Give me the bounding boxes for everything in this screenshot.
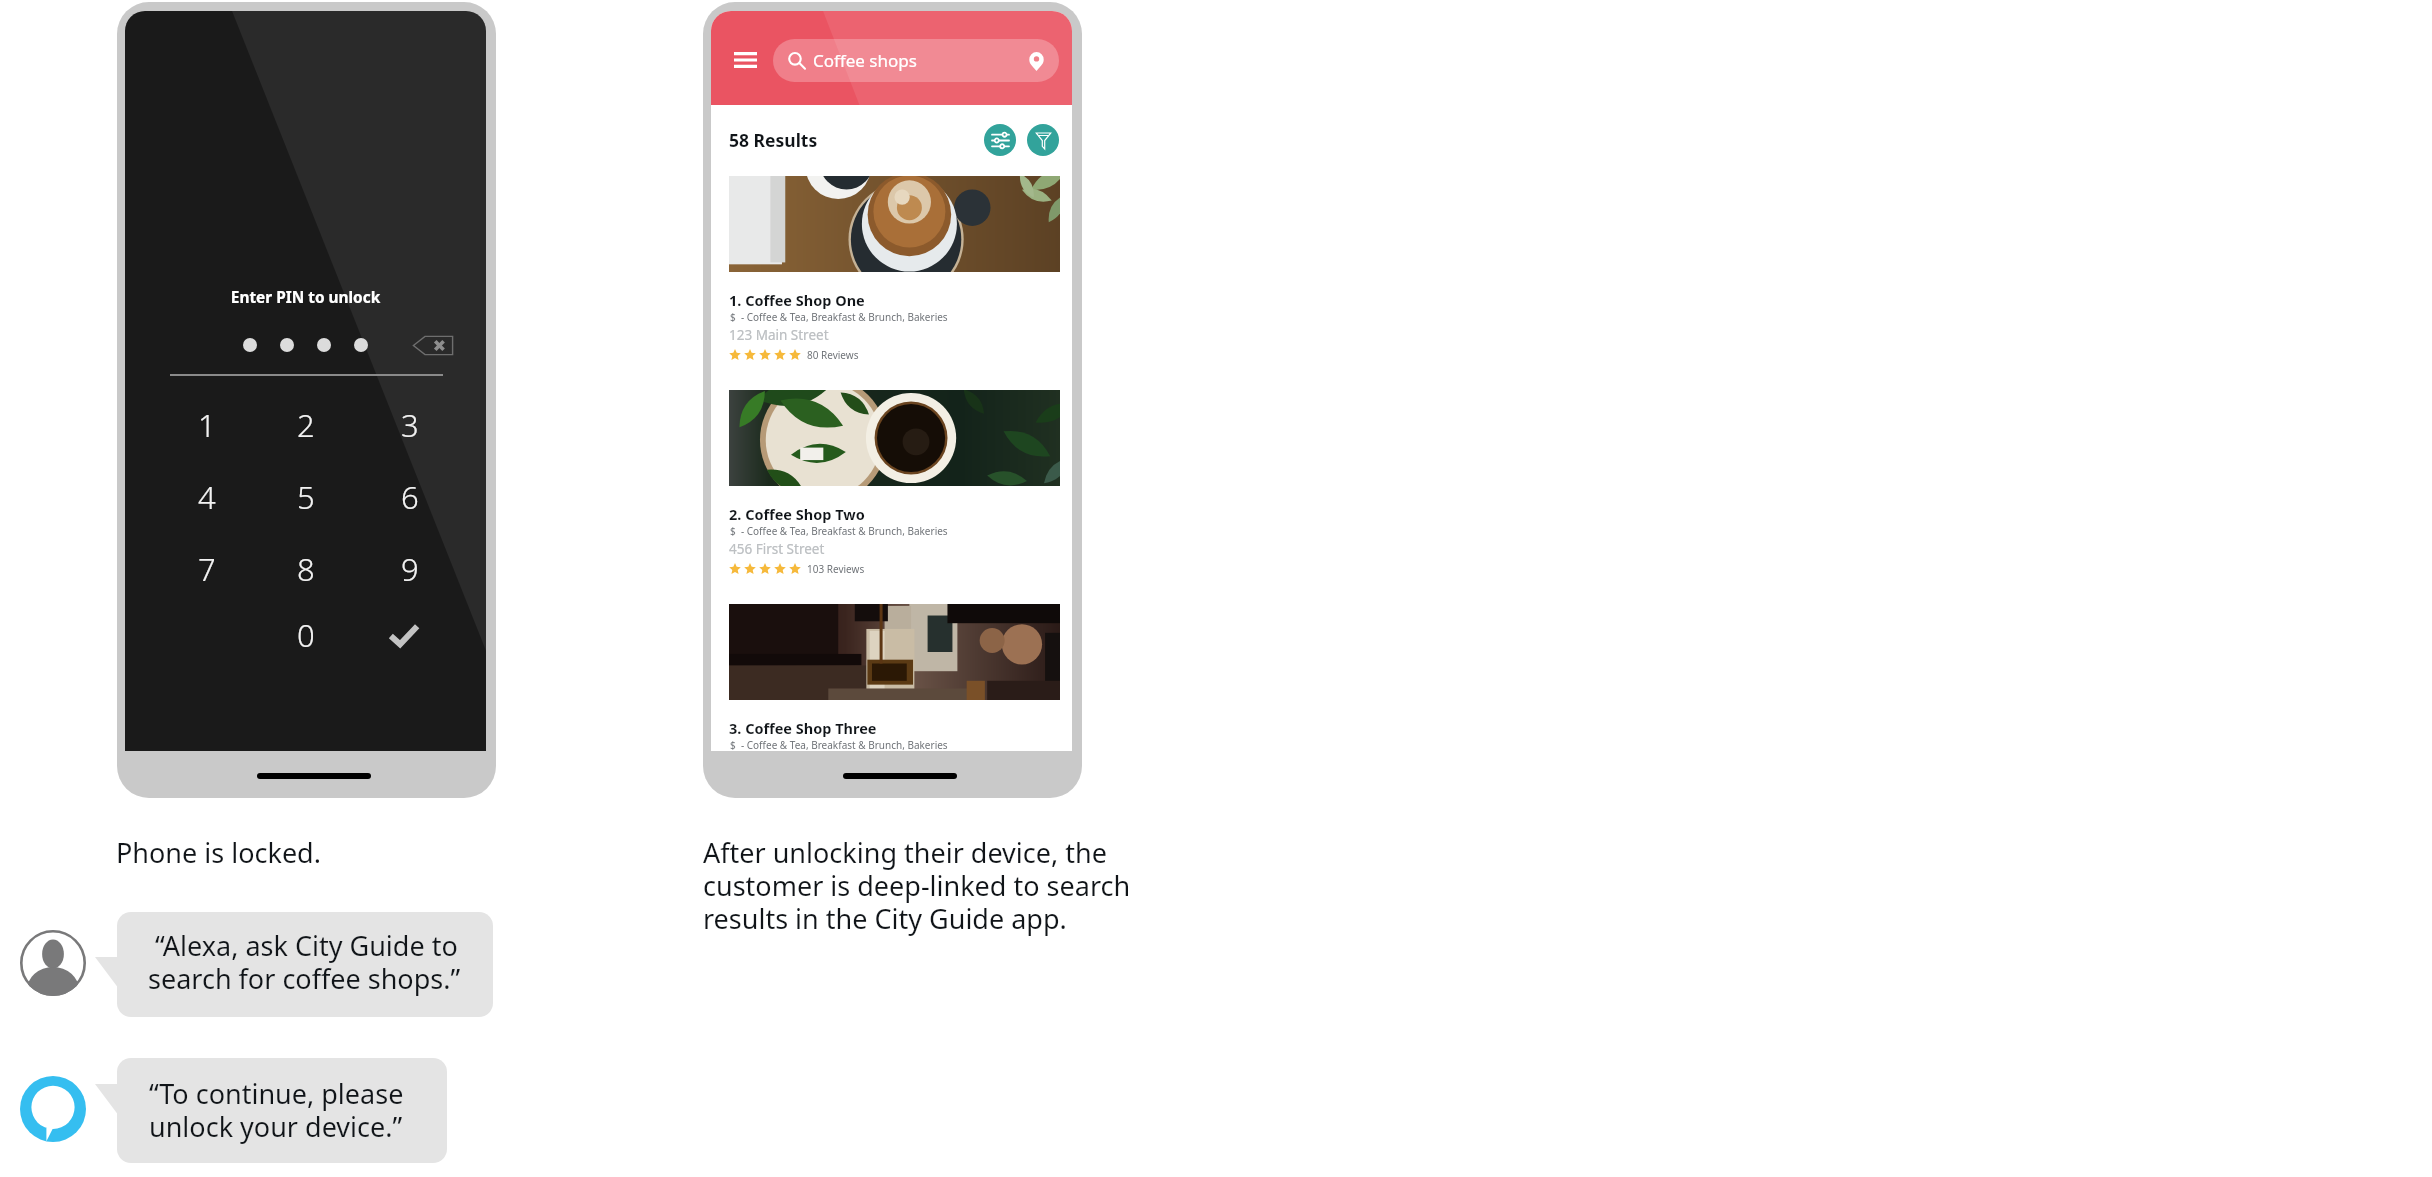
- staticText: “Alexa, ask City Guide to search for cof…: [148, 927, 461, 997]
- staticText: 80 Reviews: [807, 348, 859, 362]
- staticText: After unlocking their device, the custom…: [703, 834, 1131, 937]
- staticText: 1. Coffee Shop One: [729, 290, 865, 310]
- button[interactable]: 0: [258, 601, 354, 669]
- staticText: $ - Coffee & Tea, Breakfast & Brunch, Ba…: [730, 738, 948, 751]
- button[interactable]: Menu: [731, 47, 759, 73]
- staticText: 7: [198, 548, 216, 590]
- button[interactable]: 5: [258, 463, 354, 531]
- staticText: 3. Coffee Shop Three: [729, 718, 877, 738]
- button[interactable]: 3: [362, 391, 458, 459]
- staticText: 1: [198, 404, 216, 446]
- staticText: Coffee shops: [813, 49, 917, 72]
- button[interactable]: 1. Coffee Shop One: [729, 176, 1060, 364]
- button[interactable]: 8: [258, 535, 354, 603]
- button[interactable]: 1: [159, 391, 255, 459]
- staticText: 123 Main Street: [729, 326, 829, 344]
- staticText: $ - Coffee & Tea, Breakfast & Brunch, Ba…: [730, 310, 948, 324]
- button[interactable]: 2: [258, 391, 354, 459]
- staticText: 103 Reviews: [807, 562, 865, 576]
- button[interactable]: Confirm PIN: [356, 601, 452, 669]
- button[interactable]: Filter results: [1027, 124, 1059, 156]
- button[interactable]: 7: [159, 535, 255, 603]
- button[interactable]: Use my location: [1023, 48, 1049, 74]
- staticText: $ - Coffee & Tea, Breakfast & Brunch, Ba…: [730, 524, 948, 538]
- staticText: “To continue, please unlock your device.…: [149, 1075, 404, 1145]
- staticText: Enter PIN to unlock: [125, 287, 486, 308]
- staticText: 4: [198, 476, 216, 518]
- staticText: 58 Results: [729, 128, 818, 152]
- button[interactable]: 9: [362, 535, 458, 603]
- staticText: 456 First Street: [729, 540, 825, 558]
- button[interactable]: 3. Coffee Shop Three: [729, 604, 1060, 751]
- staticText: 8: [297, 548, 315, 590]
- staticText: 0: [297, 614, 315, 656]
- staticText: 6: [401, 476, 419, 518]
- staticText: 2. Coffee Shop Two: [729, 504, 865, 524]
- button[interactable]: 2. Coffee Shop Two: [729, 390, 1060, 578]
- staticText: Phone is locked.: [116, 834, 321, 871]
- button[interactable]: 6: [362, 463, 458, 531]
- staticText: 5: [297, 476, 315, 518]
- button[interactable]: Sort results: [984, 124, 1016, 156]
- button[interactable]: Backspace: [406, 329, 459, 361]
- staticText: 3: [401, 404, 419, 446]
- button[interactable]: Coffee shops: [773, 39, 1059, 82]
- staticText: 2: [297, 404, 315, 446]
- button[interactable]: 4: [159, 463, 255, 531]
- staticText: 9: [401, 548, 419, 590]
